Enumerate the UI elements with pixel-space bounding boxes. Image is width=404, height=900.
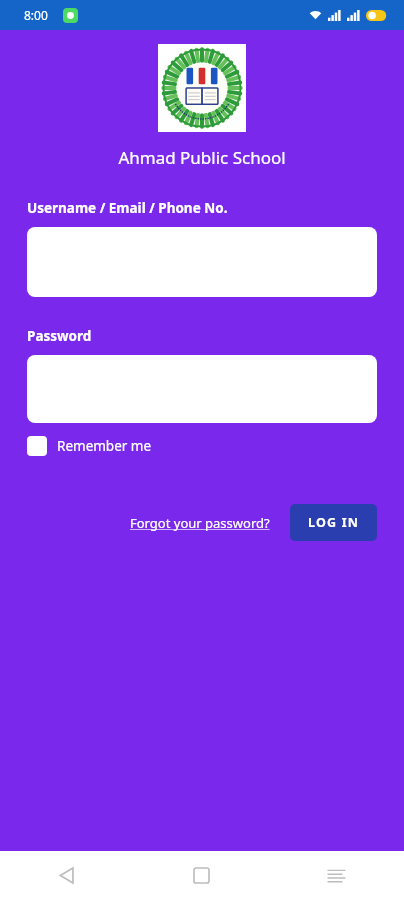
button[interactable] xyxy=(27,227,377,297)
button[interactable]: LOG IN xyxy=(290,504,377,541)
staticText: LOG IN xyxy=(308,514,360,531)
staticText: Ahmad Public School xyxy=(16,146,388,169)
button[interactable]: Home xyxy=(134,851,269,900)
staticText: 8:00 xyxy=(24,7,48,23)
staticText: Forgot your password? xyxy=(130,514,270,532)
button[interactable]: Recent apps xyxy=(269,851,404,900)
staticText: Remember me xyxy=(57,437,152,455)
button[interactable]: Remember me xyxy=(27,436,152,456)
button[interactable]: Back xyxy=(0,851,134,900)
button[interactable]: Forgot your password? xyxy=(126,508,274,538)
staticText: Password xyxy=(27,327,92,345)
staticText: Username / Email / Phone No. xyxy=(27,199,228,217)
button[interactable] xyxy=(27,355,377,423)
